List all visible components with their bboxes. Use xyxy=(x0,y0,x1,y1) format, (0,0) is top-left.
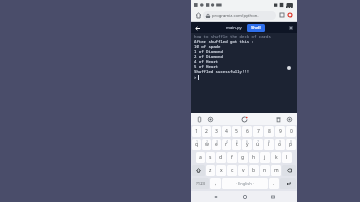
button[interactable]: Shell xyxy=(247,24,265,32)
staticText: 6 xyxy=(246,140,248,144)
staticText: 2 xyxy=(206,140,208,144)
staticText: m xyxy=(274,167,279,174)
button[interactable]: c xyxy=(227,165,237,176)
button[interactable]: x xyxy=(216,165,226,176)
button[interactable]: l xyxy=(282,152,292,163)
staticText: 8 xyxy=(268,140,270,144)
staticText: z xyxy=(209,167,212,174)
button[interactable]: main.py xyxy=(223,24,245,32)
button[interactable]: · English · xyxy=(222,178,268,189)
button[interactable]: g xyxy=(238,152,248,163)
staticText: 1 xyxy=(196,140,198,144)
button[interactable]: 4 xyxy=(222,139,231,150)
button[interactable]: 8 xyxy=(264,139,274,150)
staticText: > xyxy=(194,75,197,80)
button[interactable]: Backspace xyxy=(282,165,296,176)
staticText: ?123 xyxy=(196,181,206,187)
button[interactable]: m xyxy=(271,165,281,176)
staticText: o xyxy=(278,141,282,148)
button[interactable]: Back xyxy=(193,24,201,32)
staticText: 5 xyxy=(235,128,238,135)
button[interactable]: s xyxy=(206,152,215,163)
button[interactable]: 0 xyxy=(286,139,296,150)
button[interactable]: Theme xyxy=(206,115,214,123)
button[interactable]: Clipboard xyxy=(195,115,203,123)
button[interactable]: ?123 xyxy=(192,178,209,189)
button[interactable]: Home xyxy=(194,11,203,20)
staticText: a xyxy=(199,154,202,161)
button[interactable]: Tabs xyxy=(278,11,286,19)
button[interactable]: 6 xyxy=(242,139,252,150)
button[interactable]: f xyxy=(227,152,237,163)
button[interactable]: a xyxy=(196,152,205,163)
staticText: programiz.com/python- xyxy=(212,13,259,19)
button[interactable]: 5 xyxy=(232,126,241,137)
button[interactable]: Enter xyxy=(280,178,296,189)
staticText: e xyxy=(215,141,218,148)
button[interactable]: 3 xyxy=(212,126,221,137)
staticText: Shell xyxy=(251,25,261,31)
staticText: . xyxy=(273,180,275,187)
button[interactable]: 2 xyxy=(202,126,211,137)
button[interactable]: j xyxy=(260,152,270,163)
staticText: 1 of Diamond xyxy=(194,49,223,54)
staticText: l xyxy=(286,154,288,161)
button[interactable]: 1 xyxy=(192,126,201,137)
button[interactable]: 0 xyxy=(286,126,296,137)
button[interactable]: Recents xyxy=(268,192,277,201)
staticText: 10 of spade xyxy=(194,44,221,49)
button[interactable]: k xyxy=(271,152,281,163)
button[interactable]: . xyxy=(269,178,279,189)
staticText: 7 xyxy=(257,128,260,135)
button[interactable]: d xyxy=(216,152,226,163)
staticText: 3 xyxy=(216,140,218,144)
button[interactable]: 8 xyxy=(264,126,274,137)
button[interactable]: 7 xyxy=(253,126,263,137)
staticText: 2 xyxy=(205,128,208,135)
staticText: After shuffled got this : xyxy=(194,39,254,44)
button[interactable]: 3 xyxy=(212,139,221,150)
button[interactable]: Delete xyxy=(274,115,282,123)
staticText: w xyxy=(205,141,209,148)
staticText: 0 xyxy=(290,128,293,135)
button[interactable]: Back xyxy=(211,192,220,201)
staticText: , xyxy=(215,180,217,187)
button[interactable]: z xyxy=(206,165,215,176)
button[interactable]: 6 xyxy=(242,126,252,137)
button[interactable]: Settings xyxy=(285,115,293,123)
staticText: n xyxy=(263,167,267,174)
staticText: 5 of Heart xyxy=(194,64,218,69)
button[interactable]: 1 xyxy=(192,139,201,150)
button[interactable]: programiz.com/python- xyxy=(203,11,276,20)
button[interactable]: , xyxy=(210,178,221,189)
staticText: 3 xyxy=(215,128,218,135)
staticText: Shuffled sucessfully!!! xyxy=(194,69,250,74)
button[interactable]: 7 xyxy=(253,139,263,150)
staticText: f xyxy=(231,154,233,161)
button[interactable]: 4 xyxy=(222,126,231,137)
button[interactable]: 9 xyxy=(275,126,285,137)
button[interactable]: v xyxy=(238,165,248,176)
button[interactable]: Record xyxy=(286,11,294,19)
button[interactable]: h xyxy=(249,152,259,163)
staticText: p xyxy=(289,141,293,148)
staticText: 4 xyxy=(226,140,228,144)
staticText: 7 xyxy=(257,140,259,144)
button[interactable]: Shift xyxy=(192,165,205,176)
staticText: x xyxy=(220,167,223,174)
staticText: t xyxy=(236,141,238,148)
button[interactable]: b xyxy=(249,165,259,176)
staticText: · English · xyxy=(236,181,254,186)
button[interactable]: Settings xyxy=(287,24,295,32)
button[interactable]: 2 xyxy=(202,139,211,150)
button[interactable]: 5 xyxy=(232,139,241,150)
staticText: 9 xyxy=(279,128,282,135)
button[interactable]: Gboard xyxy=(240,115,248,123)
staticText: d xyxy=(219,154,223,161)
staticText: 9 xyxy=(279,140,281,144)
staticText: 1 xyxy=(195,128,198,135)
button[interactable]: Home xyxy=(240,192,249,201)
button[interactable]: 9 xyxy=(275,139,285,150)
button[interactable]: n xyxy=(260,165,270,176)
staticText: 4 of Heart xyxy=(194,59,218,64)
